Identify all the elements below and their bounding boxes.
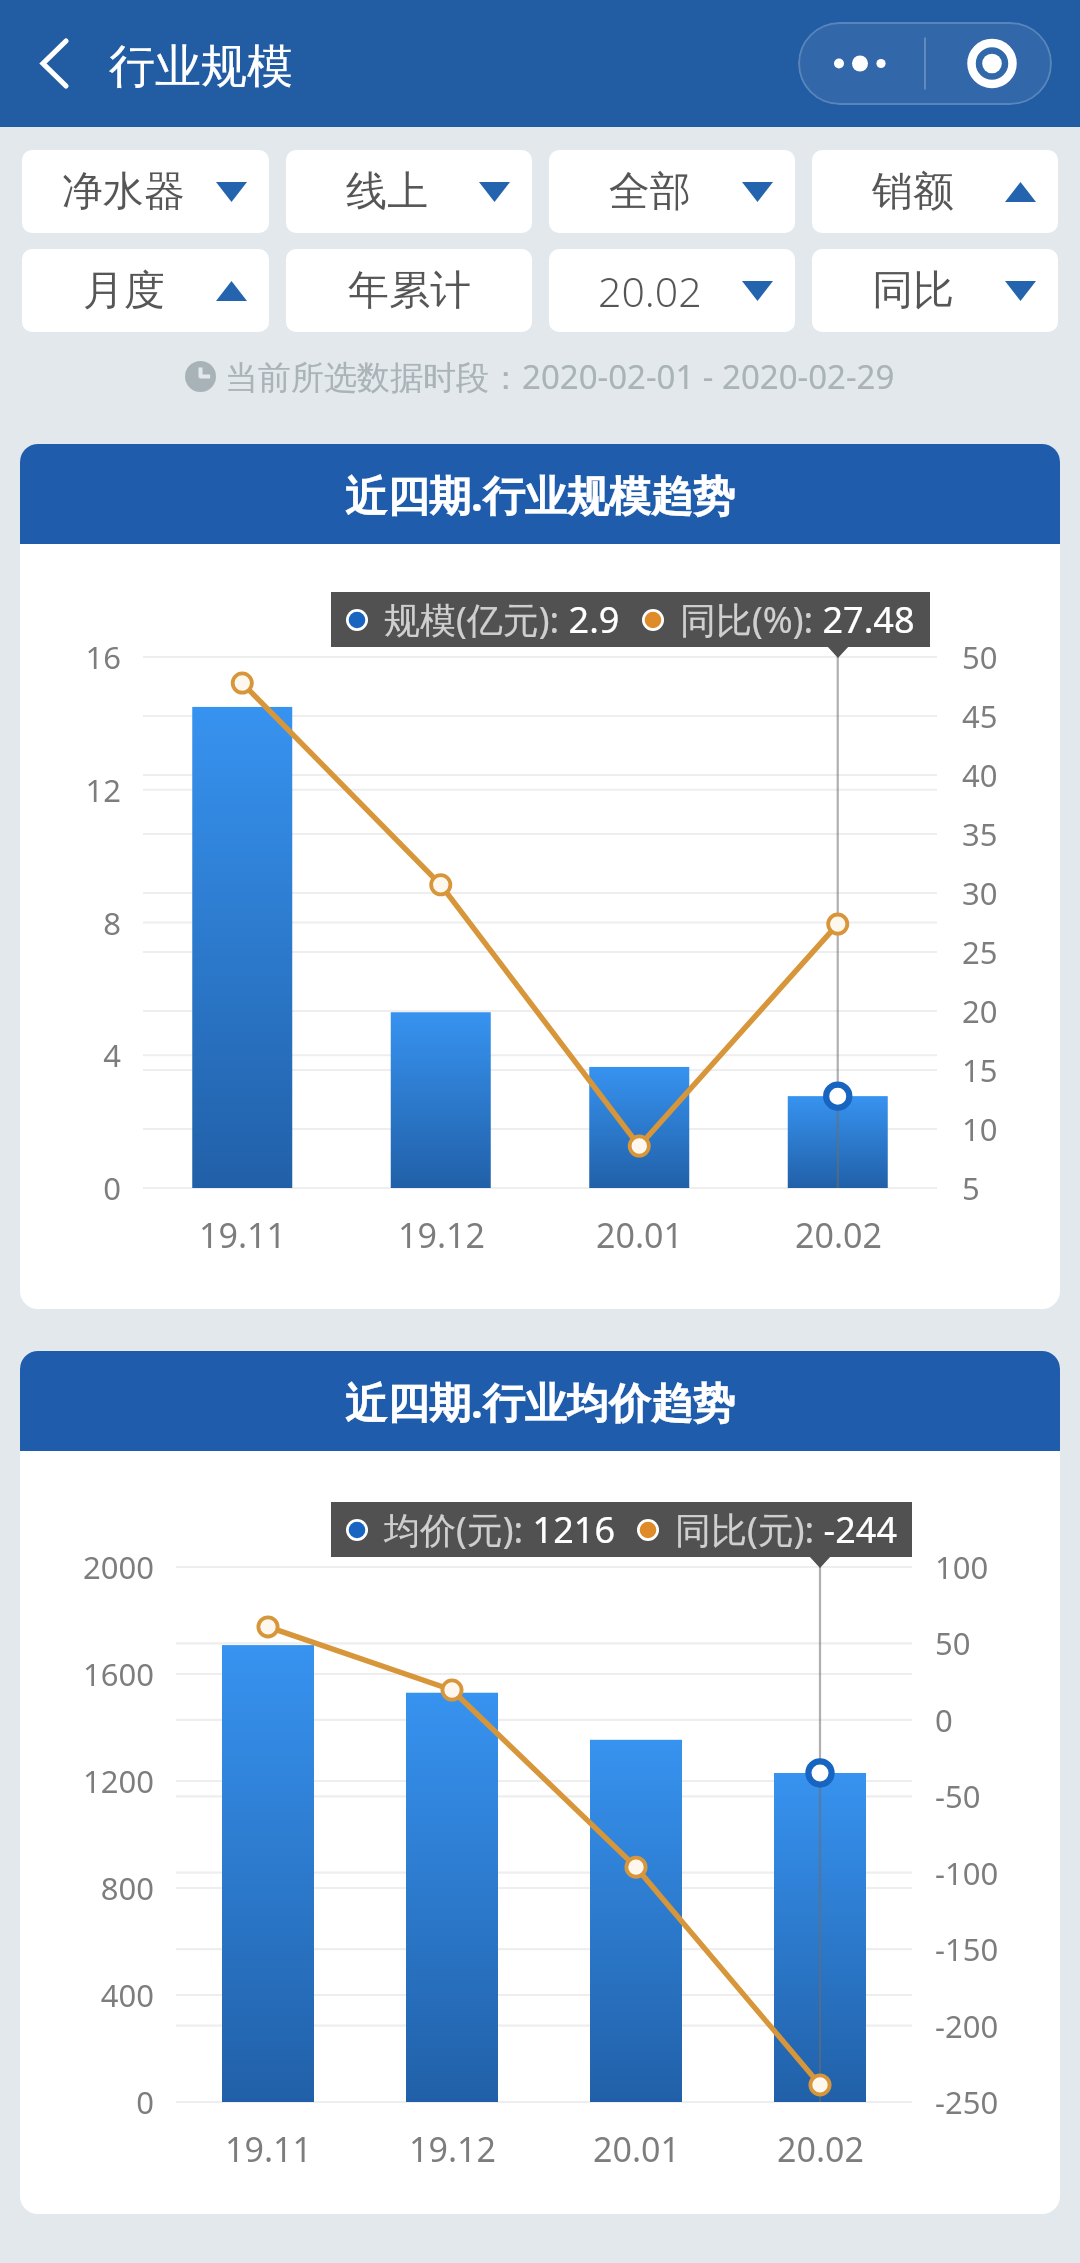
staticText: 近四期.行业规模趋势 xyxy=(345,466,735,523)
staticText: 年累计 xyxy=(348,265,471,317)
staticText: 20.02 xyxy=(598,263,702,319)
staticText: 8 xyxy=(103,902,121,944)
button[interactable]: 线上 xyxy=(286,150,532,233)
staticText: 线上 xyxy=(346,166,428,218)
staticText: 25 xyxy=(962,931,998,973)
staticText: 0 xyxy=(935,1699,953,1741)
staticText: 20 xyxy=(962,990,998,1032)
staticText: 同比 xyxy=(872,265,954,317)
staticText: 全部 xyxy=(609,166,691,218)
staticText: 0 xyxy=(136,2081,154,2123)
staticText: 同比(元): -244 xyxy=(675,1505,897,1554)
staticText: 19.12 xyxy=(398,1212,485,1258)
staticText: 35 xyxy=(962,813,998,855)
staticText: 净水器 xyxy=(62,166,185,218)
staticText: 4 xyxy=(103,1034,121,1076)
staticText: 当前所选数据时段：2020-02-01 - 2020-02-29 xyxy=(225,354,895,399)
staticText: -200 xyxy=(935,2005,999,2047)
staticText: -150 xyxy=(935,1928,999,1970)
staticText: 20.02 xyxy=(795,1212,882,1258)
staticText: 100 xyxy=(935,1546,989,1588)
button[interactable]: 销额 xyxy=(812,150,1058,233)
button[interactable]: 全部 xyxy=(549,150,795,233)
button[interactable]: 同比 xyxy=(812,249,1058,332)
staticText: -50 xyxy=(935,1775,981,1817)
staticText: 近四期.行业均价趋势 xyxy=(345,1373,735,1430)
staticText: 30 xyxy=(962,872,998,914)
staticText: 20.01 xyxy=(593,2126,680,2172)
staticText: 5 xyxy=(962,1167,980,1209)
staticText: 19.12 xyxy=(409,2126,496,2172)
button[interactable]: 净水器 xyxy=(22,150,269,233)
button[interactable]: Close mini program xyxy=(925,22,1052,105)
button[interactable]: 月度 xyxy=(22,249,269,332)
button[interactable]: 20.02 xyxy=(549,249,795,332)
staticText: 50 xyxy=(935,1622,971,1664)
staticText: 20.02 xyxy=(777,2126,864,2172)
staticText: 12 xyxy=(85,769,121,811)
staticText: 1600 xyxy=(83,1653,154,1695)
staticText: 1200 xyxy=(83,1760,154,1802)
button[interactable]: Back xyxy=(14,0,94,127)
staticText: 19.11 xyxy=(225,2126,312,2172)
staticText: 2000 xyxy=(83,1546,154,1588)
staticText: 19.11 xyxy=(199,1212,286,1258)
staticText: 均价(元): 1216 xyxy=(384,1505,615,1554)
staticText: 45 xyxy=(962,695,998,737)
staticText: 行业规模 xyxy=(109,38,293,96)
staticText: 10 xyxy=(962,1108,998,1150)
staticText: -100 xyxy=(935,1852,999,1894)
staticText: 800 xyxy=(100,1867,154,1909)
staticText: 40 xyxy=(962,754,998,796)
staticText: 50 xyxy=(962,636,998,678)
staticText: 16 xyxy=(85,636,121,678)
button[interactable]: 年累计 xyxy=(286,249,532,332)
button[interactable]: More options xyxy=(798,22,925,105)
staticText: 同比(%): 27.48 xyxy=(680,595,915,644)
staticText: 20.01 xyxy=(596,1212,683,1258)
staticText: 销额 xyxy=(872,166,954,218)
staticText: 400 xyxy=(100,1974,154,2016)
staticText: 规模(亿元): 2.9 xyxy=(384,595,620,644)
staticText: 月度 xyxy=(83,265,165,317)
staticText: -250 xyxy=(935,2081,999,2123)
staticText: 0 xyxy=(103,1167,121,1209)
staticText: 15 xyxy=(962,1049,998,1091)
